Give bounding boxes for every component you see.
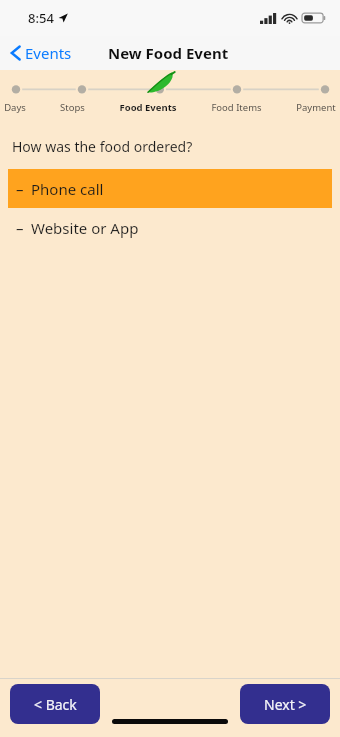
button[interactable]: < Back — [10, 684, 100, 724]
staticText: Website or App — [31, 218, 139, 238]
staticText: < Back — [34, 695, 77, 714]
staticText: 8:54 — [28, 9, 54, 27]
button[interactable]: Events — [0, 39, 80, 67]
staticText: – — [16, 179, 24, 199]
staticText: – — [16, 218, 24, 238]
button[interactable]: Payment — [296, 101, 336, 114]
button[interactable]: Next > — [240, 684, 330, 724]
button[interactable]: Food Items — [211, 101, 262, 114]
button[interactable]: Food Events — [119, 101, 177, 114]
staticText: New Food Event — [108, 43, 229, 63]
other: Current step marker — [145, 72, 175, 94]
staticText: Phone call — [31, 179, 104, 199]
button[interactable]: – — [8, 169, 332, 208]
staticText: Next > — [264, 695, 307, 714]
staticText: Events — [25, 43, 72, 63]
button[interactable]: Stops — [60, 101, 85, 114]
button[interactable]: Days — [4, 101, 26, 114]
staticText: How was the food ordered? — [12, 137, 193, 156]
button[interactable]: – — [8, 208, 332, 247]
